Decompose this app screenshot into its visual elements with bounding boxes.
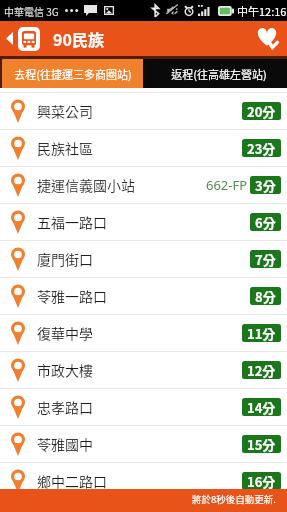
staticText: 662-FP [206, 176, 248, 194]
staticText: 苓雅一路口 [37, 286, 107, 306]
staticText: 捷運信義國小站 [37, 175, 135, 195]
staticText: 興菜公司 [37, 101, 93, 121]
button[interactable]: 苓雅一路口 [0, 278, 287, 314]
button[interactable]: 五福一路口 [0, 204, 287, 240]
staticText: 23分 [247, 139, 276, 157]
staticText: 市政大樓 [37, 360, 93, 380]
button[interactable]: 民族社區 [0, 130, 287, 166]
staticText: 忠孝路口 [37, 397, 93, 417]
staticText: 中華電信 3G [4, 4, 59, 18]
staticText: 11分 [247, 324, 276, 342]
staticText: 7分 [255, 250, 276, 268]
button[interactable]: Add to favourites [246, 21, 287, 56]
staticText: 12分 [247, 361, 276, 379]
staticText: 16分 [247, 472, 276, 490]
staticText: 五福一路口 [37, 212, 107, 232]
button[interactable]: 捷運信義國小站 [0, 167, 287, 203]
staticText: 復華中學 [37, 323, 93, 343]
staticText: 去程(往捷運三多商圈站) [14, 66, 132, 82]
staticText: 廈門街口 [37, 249, 93, 269]
button[interactable]: 廈門街口 [0, 241, 287, 277]
button[interactable]: 苓雅國中 [0, 426, 287, 462]
staticText: 中午12:16 [237, 3, 287, 19]
staticText: 20分 [247, 102, 276, 120]
staticText: 將於8秒後自動更新. [192, 492, 276, 506]
button[interactable]: 市政大樓 [0, 352, 287, 388]
button[interactable]: 鄉中二路口 [0, 463, 287, 499]
staticText: 14分 [247, 398, 276, 416]
staticText: 3分 [255, 176, 276, 194]
staticText: 返程(往高雄左營站) [171, 66, 267, 82]
staticText: 鄉中二路口 [37, 471, 107, 491]
button[interactable]: 忠孝路口 [0, 389, 287, 425]
button[interactable]: Back [0, 21, 18, 56]
staticText: 90民族 [53, 27, 104, 50]
staticText: 苓雅國中 [37, 434, 93, 454]
button[interactable]: 去程(往捷運三多商圈站) [2, 59, 143, 88]
staticText: 民族社區 [37, 138, 93, 158]
staticText: 8分 [255, 287, 276, 305]
button[interactable]: 興菜公司 [0, 93, 287, 129]
button[interactable]: 返程(往高雄左營站) [143, 59, 287, 88]
staticText: 6分 [255, 213, 276, 231]
button[interactable]: 復華中學 [0, 315, 287, 351]
staticText: 15分 [247, 435, 276, 453]
